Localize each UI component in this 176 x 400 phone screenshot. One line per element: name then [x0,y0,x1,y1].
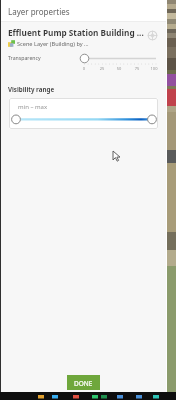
staticText: Visibility range [8,85,55,93]
button[interactable] [9,98,158,129]
button[interactable]: Transparency slider [76,50,164,72]
staticText: 75 [129,66,145,71]
staticText: 100 [146,66,162,71]
staticText: Layer properties [8,6,70,17]
staticText: Transparency [8,54,41,61]
staticText: Scene Layer (Building) by ... [17,40,89,48]
staticText: 0 [76,66,92,71]
staticText: 50 [111,66,127,71]
staticText: min – max [18,103,48,111]
button[interactable]: DONE [67,375,100,390]
button[interactable]: Zoom to layer [146,29,159,42]
staticText: 25 [94,66,110,71]
staticText: DONE [74,379,93,388]
staticText: Effluent Pump Station Building ... [8,27,144,38]
